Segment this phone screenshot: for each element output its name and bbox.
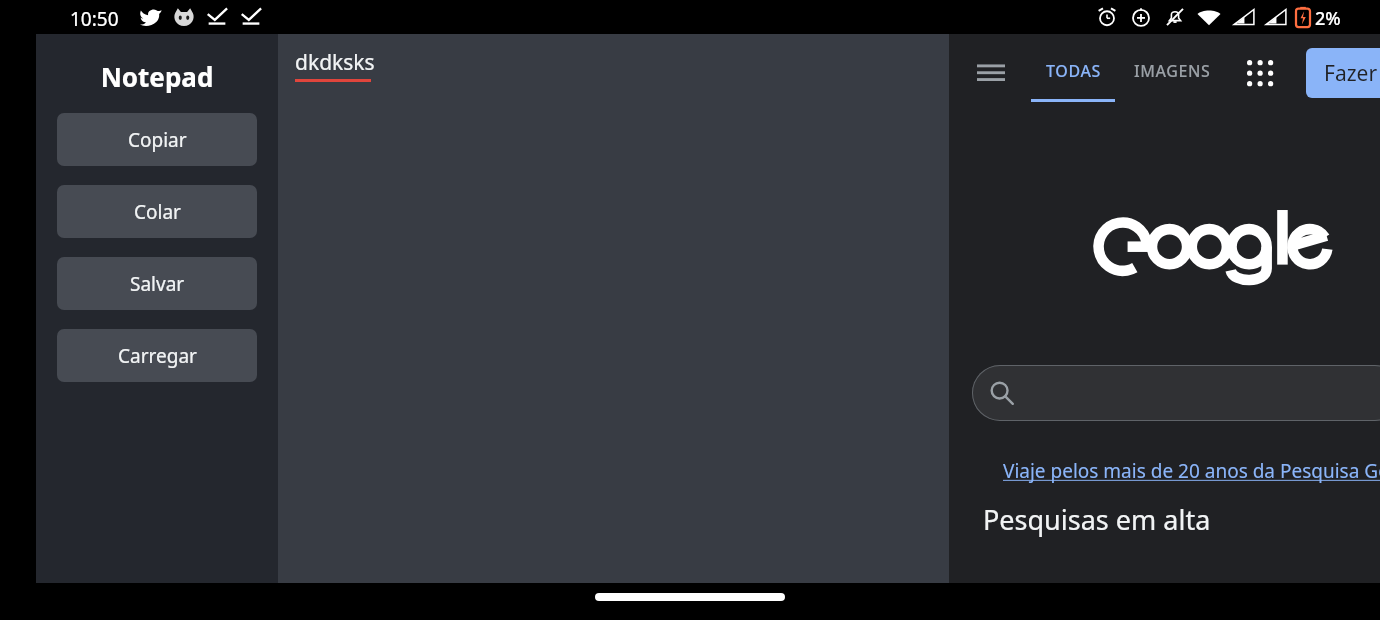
button[interactable]: Copiar: [57, 113, 257, 166]
button[interactable]: Colar: [57, 185, 257, 238]
staticText: Viaje pelos mais de 20 anos da Pesquisa …: [1003, 458, 1380, 484]
staticText: dkdksks: [295, 48, 375, 77]
staticText: Fazer login: [1324, 59, 1380, 88]
button[interactable]: Menu: [971, 56, 1011, 88]
staticText: 10:50: [70, 6, 119, 32]
button[interactable]: [972, 365, 1380, 421]
staticText: 2%: [1315, 6, 1341, 31]
staticText: Carregar: [118, 343, 197, 369]
staticText: Colar: [134, 199, 181, 225]
button[interactable]: Fazer login: [1306, 48, 1380, 98]
staticText: IMAGENS: [1134, 60, 1211, 82]
staticText: Notepad: [36, 59, 278, 94]
staticText: Copiar: [128, 127, 187, 153]
button[interactable]: TODAS: [1031, 34, 1115, 110]
button[interactable]: Salvar: [57, 257, 257, 310]
button[interactable]: Google apps: [1241, 54, 1277, 90]
staticText: TODAS: [1046, 60, 1101, 82]
button[interactable]: Carregar: [57, 329, 257, 382]
staticText: Salvar: [130, 271, 185, 297]
staticText: Pesquisas em alta: [983, 501, 1211, 538]
button[interactable]: IMAGENS: [1134, 60, 1211, 82]
button[interactable]: Viaje pelos mais de 20 anos da Pesquisa …: [1003, 458, 1380, 484]
